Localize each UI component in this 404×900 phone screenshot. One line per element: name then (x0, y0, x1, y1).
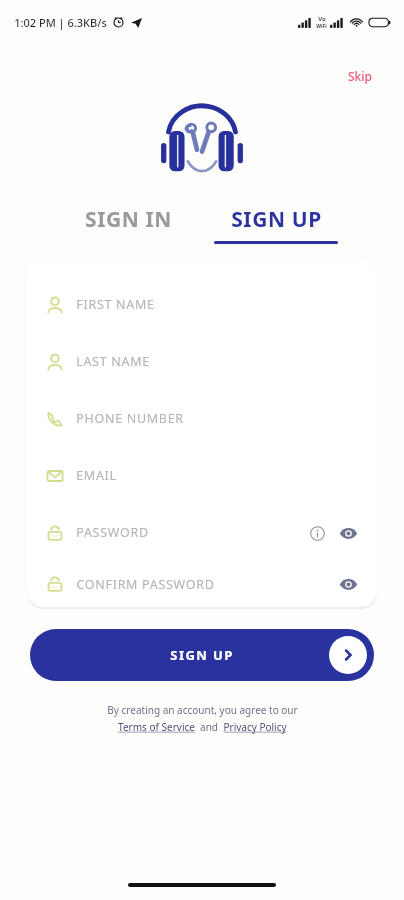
button[interactable]: SIGN UP (211, 205, 341, 244)
other: Continue (329, 636, 367, 674)
button[interactable]: Terms of Service (118, 720, 195, 734)
button[interactable]: Show password (335, 520, 361, 546)
staticText: Skip (348, 68, 372, 84)
staticText: CONFIRM PASSWORD (76, 576, 215, 593)
staticText: PHONE NUMBER (76, 410, 184, 427)
staticText: PASSWORD (76, 524, 149, 541)
staticText: SIGN UP (231, 205, 322, 234)
staticText: EMAIL (76, 467, 117, 484)
button[interactable]: LAST NAME (27, 333, 377, 390)
button[interactable]: Privacy Policy (223, 720, 287, 734)
button[interactable]: PHONE NUMBER (27, 390, 377, 447)
staticText: and (200, 720, 218, 734)
button[interactable]: CONFIRM PASSWORD (27, 561, 377, 607)
staticText: SIGN IN (85, 205, 172, 234)
staticText: 1:02 PM | 6.3KB/s (14, 15, 107, 30)
staticText: FIRST NAME (76, 296, 155, 313)
button[interactable]: FIRST NAME (27, 276, 377, 333)
staticText: LAST NAME (76, 353, 150, 370)
button[interactable]: Password info (305, 521, 329, 545)
staticText: Vo (318, 15, 326, 23)
staticText: WiFi (316, 23, 327, 30)
button[interactable]: PASSWORD (27, 504, 377, 561)
button[interactable]: SIGN UP (30, 629, 374, 681)
button[interactable]: Show password (335, 571, 361, 597)
staticText: Privacy Policy (223, 720, 287, 734)
staticText: Terms of Service (118, 720, 195, 734)
button[interactable]: SIGN IN (63, 205, 193, 234)
staticText: By creating an account, you agree to our (107, 703, 298, 717)
button[interactable]: EMAIL (27, 447, 377, 504)
button[interactable]: Skip (342, 64, 378, 88)
staticText: SIGN UP (170, 646, 234, 664)
